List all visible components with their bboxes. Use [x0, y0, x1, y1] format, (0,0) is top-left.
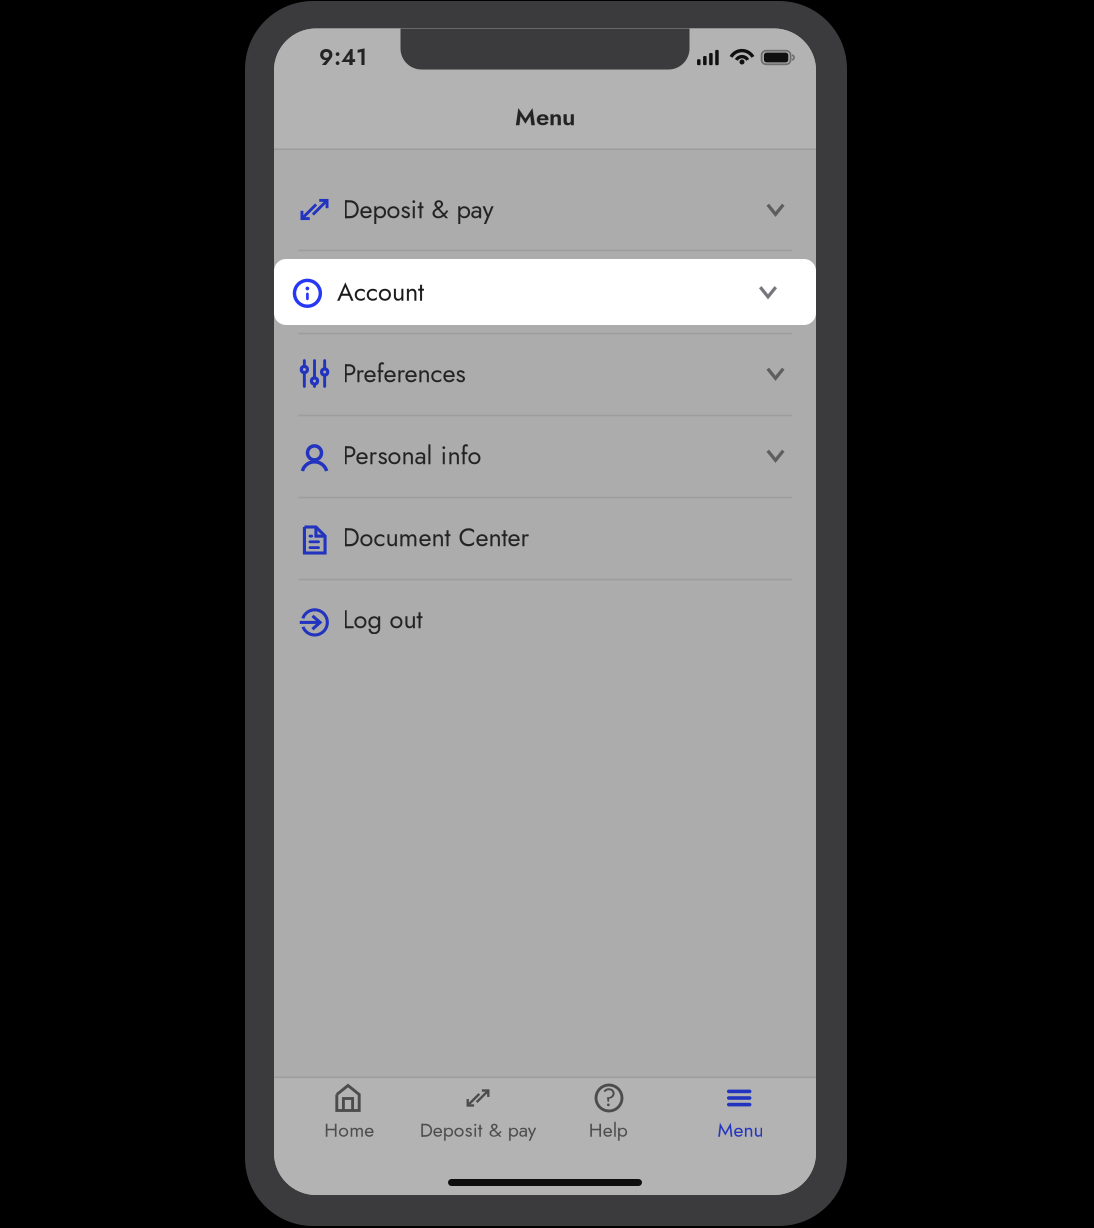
staticText: Preferences	[342, 355, 465, 392]
staticText: Home	[324, 1116, 374, 1144]
button[interactable]: Personal info	[274, 28, 816, 1195]
button[interactable]: Home	[274, 28, 816, 1195]
staticText: Document Center	[342, 519, 529, 556]
button[interactable]: Deposit & pay	[274, 28, 816, 1195]
staticText: Personal info	[342, 437, 481, 474]
staticText: Deposit & pay	[420, 1116, 537, 1144]
staticText: Menu	[717, 1116, 763, 1144]
staticText: 9:41	[319, 41, 367, 73]
staticText: Log out	[342, 601, 422, 638]
staticText: ?	[602, 1079, 616, 1116]
staticText: Account	[337, 274, 424, 310]
button[interactable]: ?	[274, 28, 816, 1195]
button[interactable]: Deposit & pay	[274, 28, 816, 1195]
button[interactable]: Account	[274, 28, 816, 1195]
button[interactable]: Log out	[274, 28, 816, 1195]
staticText: Menu	[515, 99, 575, 134]
button[interactable]: Preferences	[274, 28, 816, 1195]
staticText: Help	[589, 1116, 628, 1144]
button[interactable]: Menu	[274, 28, 816, 1195]
button[interactable]: Document Center	[274, 28, 816, 1195]
staticText: Deposit & pay	[342, 191, 493, 228]
